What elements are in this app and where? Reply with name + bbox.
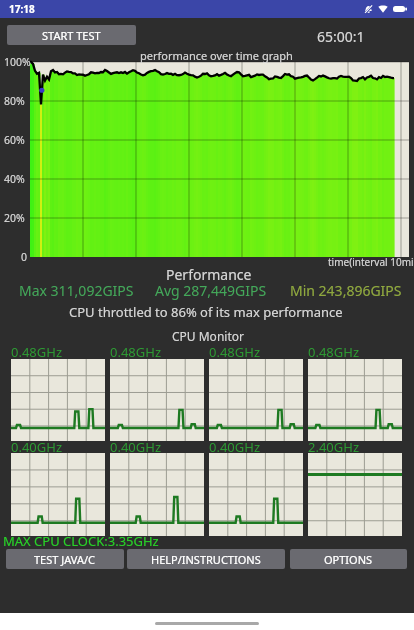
staticText: 40% [4, 172, 25, 186]
staticText: 17:18 [9, 2, 35, 16]
staticText: 60% [4, 133, 25, 147]
staticText: MAX CPU CLOCK:3.35GHz [3, 532, 159, 550]
button[interactable]: TEST JAVA/C [6, 549, 124, 569]
button[interactable]: START TEST [7, 25, 136, 45]
staticText: Avg 287,449GIPS [155, 281, 267, 300]
staticText: START TEST [42, 28, 101, 43]
staticText: 2.40GHz [308, 438, 359, 456]
staticText: 20% [4, 211, 25, 225]
staticText: 100% [4, 55, 31, 69]
staticText: HELP/INSTRUCTIONS [151, 552, 261, 567]
button[interactable]: OPTIONS [290, 549, 407, 569]
staticText: 0.40GHz [11, 438, 62, 456]
staticText: 0.48GHz [110, 343, 161, 361]
staticText: 0.40GHz [209, 438, 260, 456]
button[interactable]: HELP/INSTRUCTIONS [127, 549, 285, 569]
staticText: 0 [21, 250, 28, 264]
other: Notifications silenced [364, 5, 373, 14]
staticText: 80% [4, 94, 25, 108]
staticText: time(interval 10min) [328, 255, 414, 269]
staticText: Min 243,896GIPS [290, 281, 402, 300]
staticText: TEST JAVA/C [34, 552, 96, 567]
staticText: 0.48GHz [11, 343, 62, 361]
staticText: OPTIONS [324, 552, 373, 567]
staticText: 0.48GHz [308, 343, 359, 361]
staticText: performance over time graph [140, 48, 293, 63]
staticText: CPU throttled to 86% of its max performa… [69, 303, 343, 321]
other: Battery [393, 5, 407, 13]
staticText: Performance [166, 265, 252, 284]
staticText: 0.48GHz [209, 343, 260, 361]
staticText: Max 311,092GIPS [19, 281, 134, 300]
staticText: 65:00:1 [317, 27, 365, 46]
staticText: 0.40GHz [110, 438, 161, 456]
other: Wi-Fi [378, 4, 388, 14]
staticText: CPU Monitor [172, 328, 244, 344]
